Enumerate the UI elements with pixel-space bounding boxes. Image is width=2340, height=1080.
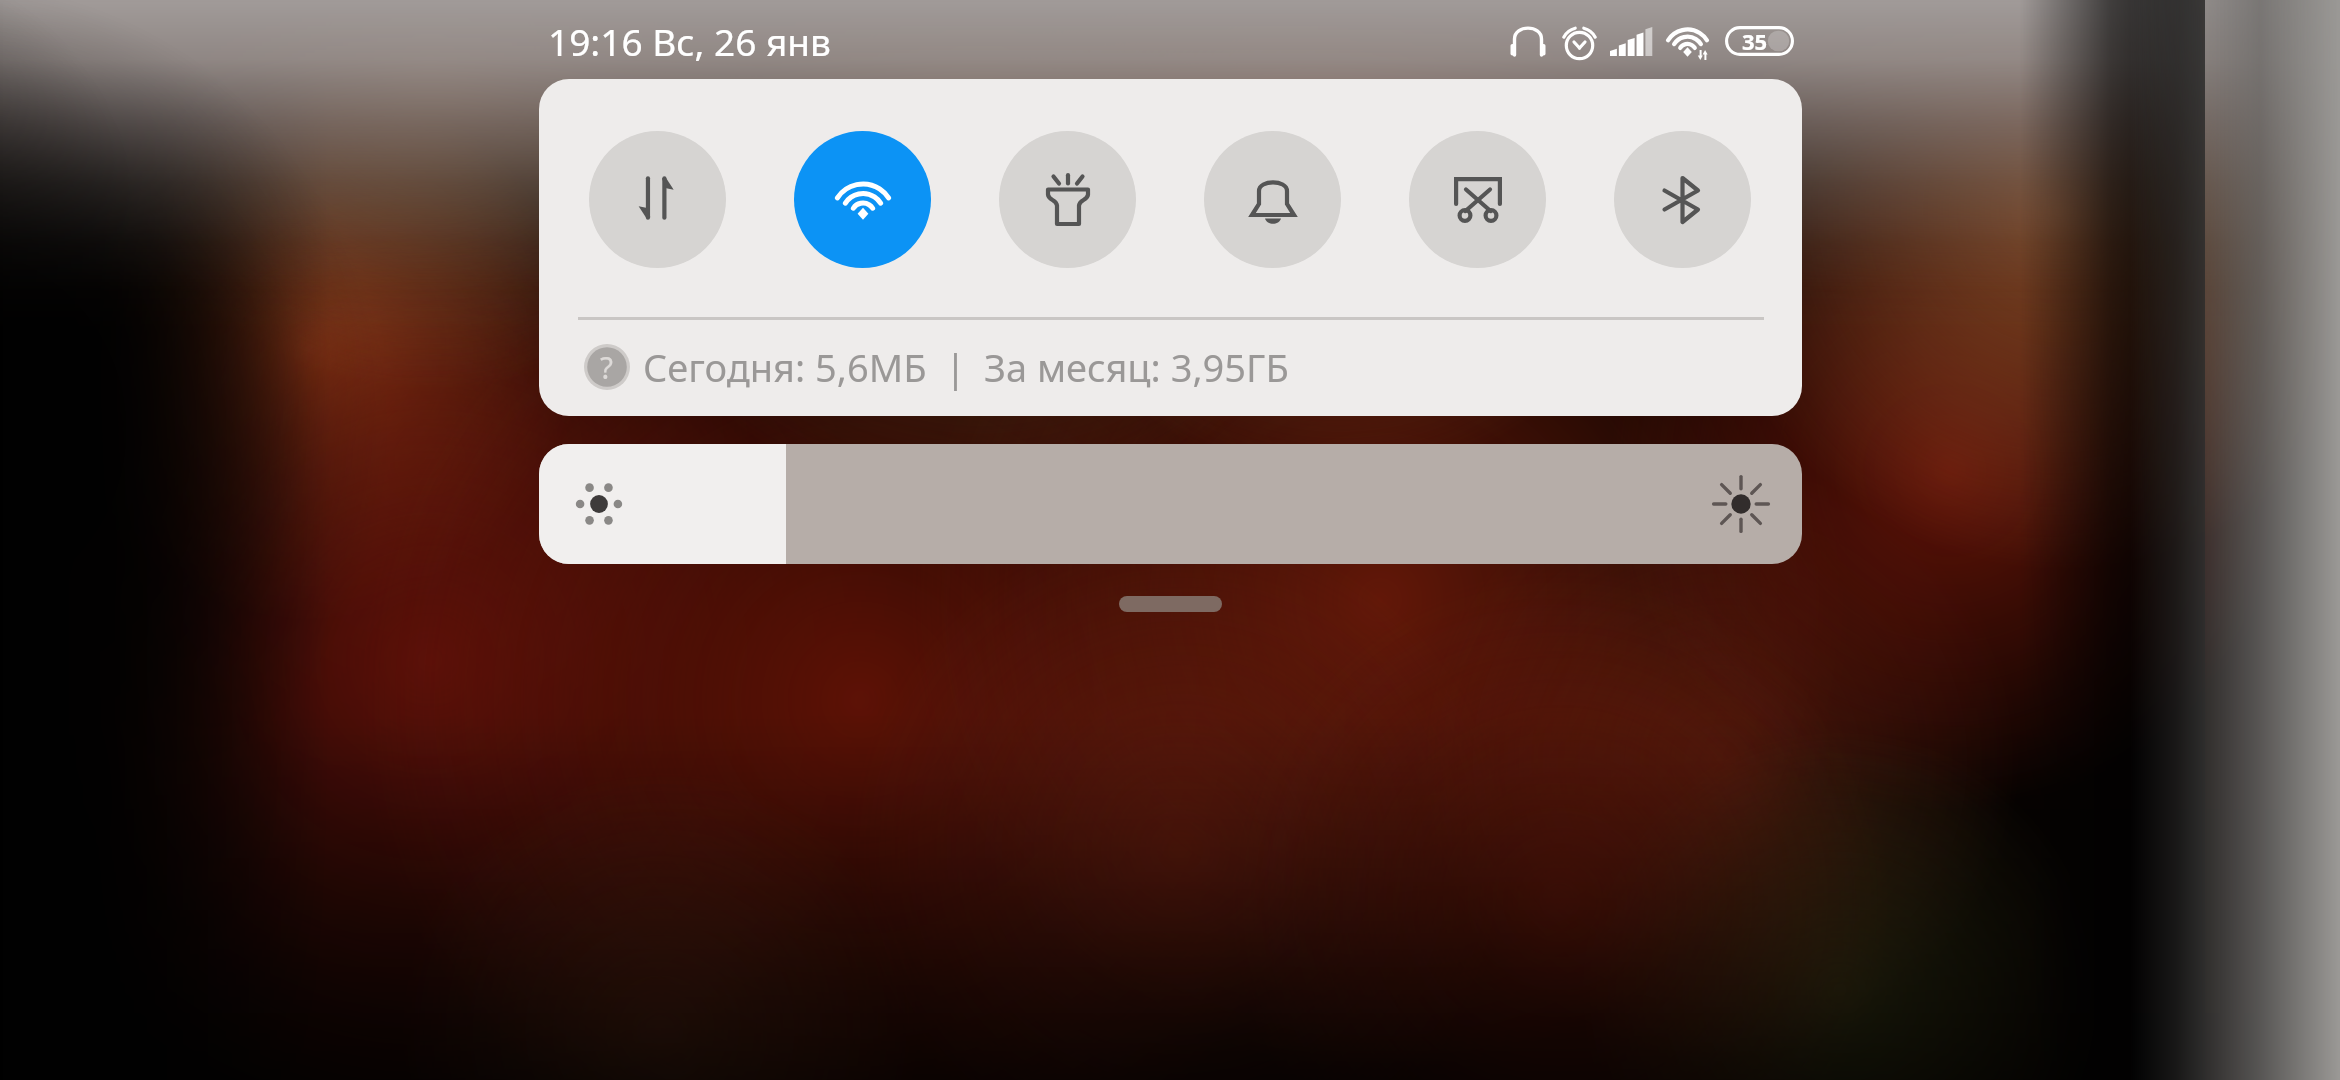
button[interactable]: ? [539,328,1802,405]
button[interactable]: Wi-Fi [794,131,931,268]
button[interactable]: Screenshot [1409,131,1546,268]
staticText: 35 [1742,26,1768,56]
staticText: Сегодня: 5,6МБ [643,341,927,393]
staticText: За месяц: 3,95ГБ [984,341,1289,393]
button[interactable]: Flashlight [999,131,1136,268]
staticText: 19:16 Вс, 26 янв [548,16,831,66]
button[interactable]: Bluetooth [1614,131,1751,268]
staticText: ? [600,347,614,388]
button[interactable]: Brightness [539,444,1802,564]
staticText: | [945,341,966,393]
button[interactable]: Do not disturb [1204,131,1341,268]
button[interactable]: Mobile data [589,131,726,268]
